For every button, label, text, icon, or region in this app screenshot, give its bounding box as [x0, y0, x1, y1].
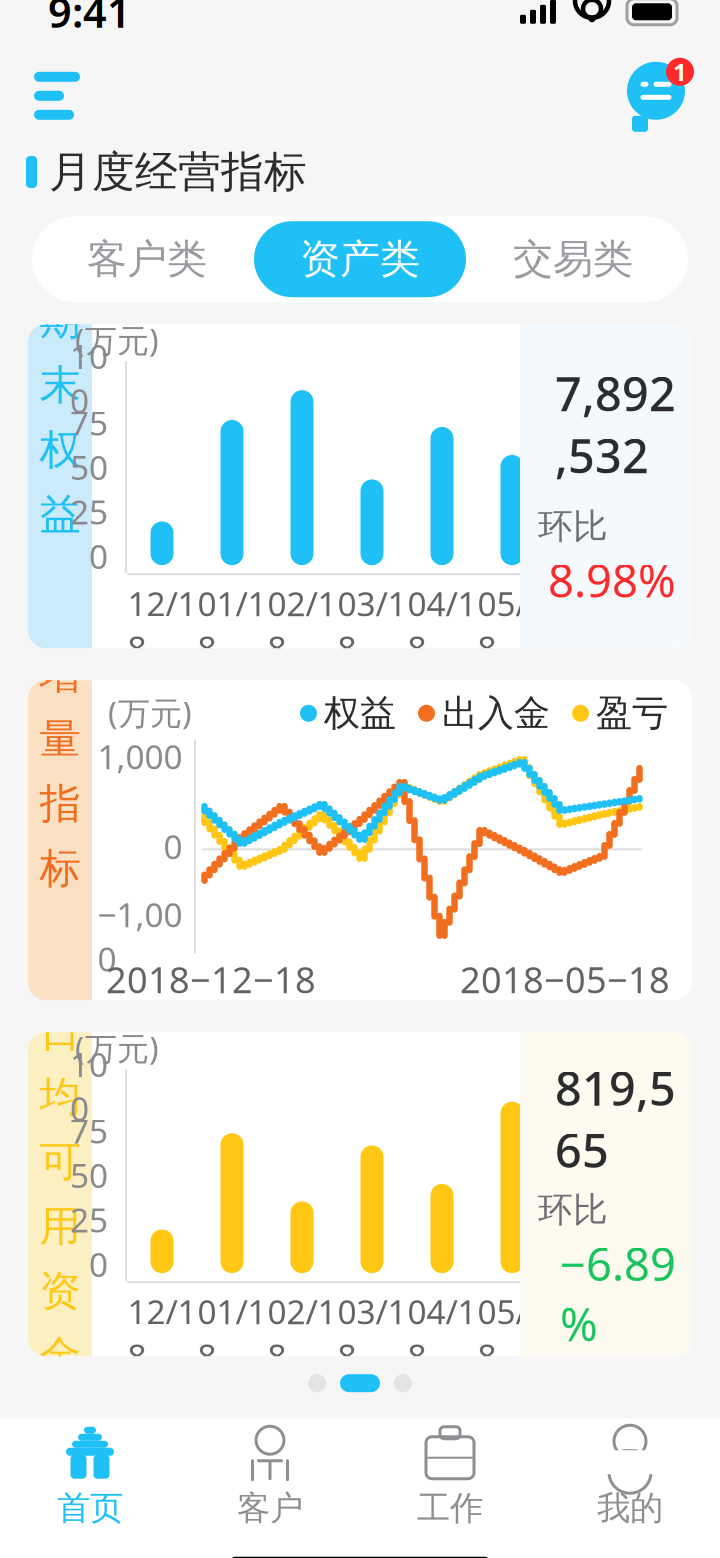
- staticText: 7,892,532: [555, 362, 676, 486]
- staticText: 01/18: [197, 1289, 266, 1378]
- staticText: 75: [70, 401, 108, 445]
- button[interactable]: 交易类: [466, 227, 680, 291]
- staticText: 100: [70, 1042, 108, 1130]
- staticText: 03/18: [337, 581, 406, 670]
- staticText: 03/18: [337, 1289, 406, 1378]
- staticText: 权益: [324, 691, 396, 735]
- staticText: 02/18: [267, 1289, 336, 1378]
- button[interactable]: 我的: [540, 1421, 720, 1533]
- button[interactable]: Menu: [24, 62, 90, 130]
- staticText: −6.89%: [560, 1233, 676, 1354]
- staticText: 客户类: [87, 235, 207, 284]
- staticText: 01/18: [197, 581, 266, 670]
- staticText: 金: [39, 1331, 80, 1381]
- staticText: 首页: [57, 1488, 123, 1529]
- staticText: 100: [70, 334, 108, 422]
- staticText: 04/18: [407, 1289, 476, 1378]
- staticText: 12/18: [127, 1289, 196, 1378]
- button[interactable]: 工作: [360, 1421, 540, 1533]
- staticText: 量: [39, 713, 80, 764]
- staticText: (万元): [108, 691, 192, 734]
- staticText: 用: [39, 1201, 80, 1252]
- staticText: 25: [70, 490, 108, 534]
- staticText: 2018−12−18: [106, 955, 316, 1003]
- staticText: 05/18: [477, 581, 546, 670]
- button[interactable]: 首页: [0, 1421, 180, 1533]
- staticText: 月度经营指标: [49, 146, 307, 198]
- staticText: 1,000: [97, 734, 182, 779]
- staticText: 12/18: [127, 581, 196, 670]
- staticText: 工作: [417, 1488, 483, 1529]
- staticText: 02/18: [267, 581, 336, 670]
- staticText: 0: [89, 534, 108, 578]
- staticText: 标: [39, 843, 80, 894]
- staticText: 75: [70, 1109, 108, 1153]
- staticText: 益: [39, 489, 80, 540]
- staticText: 指: [39, 778, 80, 829]
- staticText: 增: [39, 649, 80, 700]
- staticText: 盈亏: [596, 691, 668, 735]
- staticText: 可: [39, 1136, 80, 1187]
- staticText: 0: [163, 824, 182, 869]
- staticText: 交易类: [513, 235, 633, 284]
- staticText: 期: [39, 295, 80, 346]
- staticText: 客户: [237, 1488, 303, 1529]
- staticText: −1,000: [97, 892, 182, 981]
- staticText: 末: [39, 359, 80, 410]
- staticText: 2018−05−18: [460, 955, 670, 1003]
- staticText: 资: [39, 1266, 80, 1317]
- staticText: 我的: [597, 1488, 663, 1529]
- staticText: 8.98%: [548, 550, 676, 610]
- staticText: 25: [70, 1198, 108, 1242]
- staticText: 1: [673, 56, 687, 88]
- staticText: 50: [70, 1153, 108, 1197]
- button[interactable]: Messages: [616, 54, 696, 138]
- staticText: 均: [39, 1072, 80, 1122]
- staticText: 05/18: [477, 1289, 546, 1378]
- staticText: (万元): [75, 1027, 159, 1069]
- staticText: 9:41: [48, 0, 131, 39]
- staticText: 819,565: [555, 1057, 676, 1181]
- staticText: 权: [39, 424, 80, 475]
- button[interactable]: 资产类: [254, 221, 466, 297]
- button[interactable]: 客户: [180, 1421, 360, 1533]
- staticText: 04/18: [407, 581, 476, 670]
- staticText: 50: [70, 445, 108, 489]
- staticText: 出入金: [442, 691, 550, 735]
- button[interactable]: 客户类: [40, 227, 254, 291]
- staticText: 环比: [538, 1189, 608, 1231]
- staticText: 日: [39, 1007, 80, 1058]
- staticText: (万元): [75, 319, 159, 361]
- staticText: 环比: [538, 505, 608, 548]
- staticText: 资产类: [300, 235, 420, 284]
- staticText: 0: [89, 1242, 108, 1286]
